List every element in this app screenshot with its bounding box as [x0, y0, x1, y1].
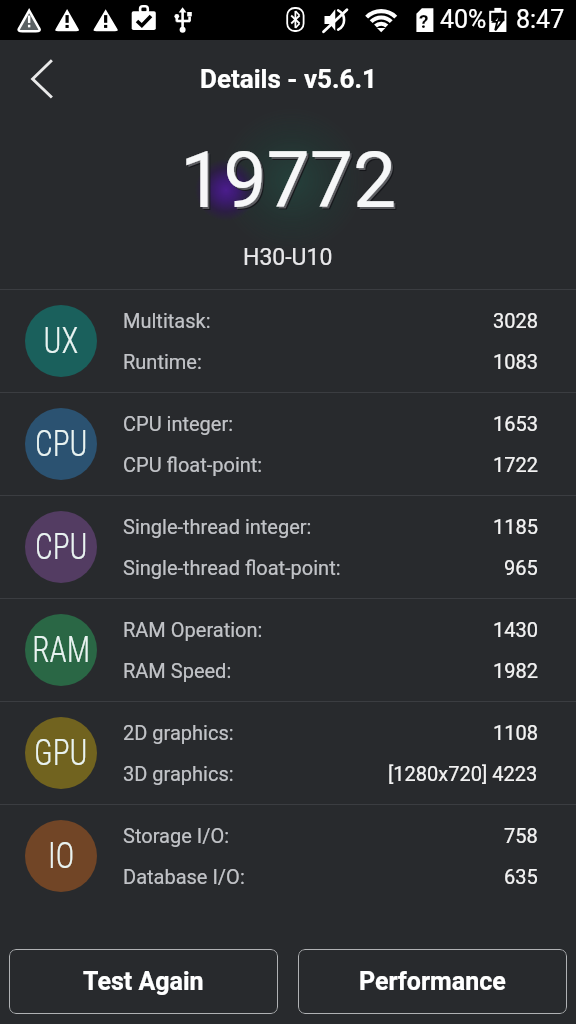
button[interactable]: Back	[10, 47, 74, 111]
staticText: Test Again	[83, 967, 204, 996]
staticText: 19772	[180, 136, 397, 226]
staticText: CPU float-point:	[123, 453, 263, 476]
staticText: 1653	[493, 412, 538, 435]
button[interactable]: RAM	[0, 599, 576, 701]
staticText: H30-U10	[243, 244, 333, 271]
button[interactable]: IO	[0, 805, 576, 907]
staticText: Multitask:	[123, 309, 211, 332]
staticText: Runtime:	[123, 350, 202, 373]
staticText: Single-thread float-point:	[123, 556, 341, 579]
staticText: 8:47	[516, 5, 565, 34]
staticText: Performance	[359, 967, 506, 996]
staticText: [1280x720] 4223	[388, 762, 538, 785]
staticText: Single-thread integer:	[123, 515, 312, 538]
staticText: 1185	[493, 515, 538, 538]
staticText: IO	[48, 835, 75, 877]
staticText: ?	[419, 10, 429, 32]
button[interactable]: UX	[0, 290, 576, 392]
button[interactable]: Test Again	[9, 949, 278, 1014]
button[interactable]: Performance	[298, 949, 567, 1014]
staticText: 1722	[493, 453, 538, 476]
staticText: Details - v5.6.1	[200, 64, 377, 94]
staticText: 1430	[493, 618, 538, 641]
staticText: CPU integer:	[123, 412, 234, 435]
button[interactable]: GPU	[0, 702, 576, 804]
staticText: 19772	[182, 138, 399, 228]
staticText: Database I/O:	[123, 865, 245, 888]
staticText: 3D graphics:	[123, 762, 234, 785]
staticText: 2D graphics:	[123, 721, 234, 744]
staticText: 3028	[493, 309, 538, 332]
staticText: RAM	[32, 629, 91, 671]
staticText: UX	[44, 320, 78, 362]
staticText: 1083	[493, 350, 538, 373]
staticText: Storage I/O:	[123, 824, 229, 847]
staticText: CPU	[35, 423, 88, 465]
button[interactable]: CPU	[0, 496, 576, 598]
button[interactable]: CPU	[0, 393, 576, 495]
staticText: 635	[504, 865, 538, 888]
staticText: 1982	[493, 659, 538, 682]
staticText: CPU	[35, 526, 88, 568]
staticText: 965	[504, 556, 538, 579]
staticText: RAM Operation:	[123, 618, 263, 641]
staticText: 758	[504, 824, 538, 847]
staticText: 40%	[440, 5, 487, 34]
staticText: 1108	[493, 721, 538, 744]
staticText: RAM Speed:	[123, 659, 232, 682]
staticText: 19772	[183, 139, 400, 229]
staticText: GPU	[34, 732, 88, 774]
